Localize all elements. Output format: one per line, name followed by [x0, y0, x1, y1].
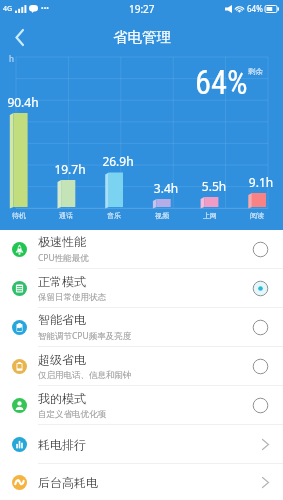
- button[interactable]: Back: [0, 18, 38, 50]
- staticText: 极速性能: [38, 234, 86, 249]
- staticText: 4G: [3, 4, 13, 14]
- staticText: •••: [41, 4, 49, 14]
- staticText: 9.1h: [241, 174, 281, 190]
- staticText: 保留日常使用状态: [38, 292, 106, 303]
- staticText: 后台高耗电: [38, 475, 248, 490]
- staticText: 19.7h: [50, 161, 90, 177]
- staticText: h: [9, 53, 14, 64]
- staticText: 超级省电: [38, 352, 86, 367]
- button[interactable]: 正常模式: [0, 269, 283, 307]
- staticText: 90.4h: [3, 94, 43, 110]
- staticText: 我的模式: [38, 391, 86, 406]
- staticText: 音乐: [94, 211, 134, 220]
- staticText: 智能调节CPU频率及亮度: [38, 330, 132, 342]
- staticText: 耗电排行: [38, 437, 248, 452]
- staticText: 26.9h: [98, 153, 138, 169]
- staticText: 64%: [195, 64, 248, 102]
- staticText: 待机: [0, 211, 39, 220]
- button[interactable]: 耗电排行: [0, 425, 283, 463]
- staticText: 64%: [247, 3, 263, 14]
- staticText: 仅启用电话、信息和闹钟: [38, 370, 132, 381]
- staticText: 19:27: [129, 2, 155, 16]
- staticText: CPU性能最优: [38, 252, 89, 264]
- staticText: 上网: [190, 211, 230, 220]
- staticText: 视频: [142, 211, 182, 220]
- staticText: 通话: [46, 211, 86, 220]
- staticText: 自定义省电优化项: [38, 409, 106, 420]
- button[interactable]: 智能省电: [0, 308, 283, 346]
- staticText: 正常模式: [38, 274, 86, 289]
- staticText: 省电管理: [113, 28, 171, 46]
- staticText: 智能省电: [38, 312, 86, 327]
- staticText: 3.4h: [146, 180, 186, 196]
- button[interactable]: 后台高耗电: [0, 464, 283, 500]
- staticText: 剩余: [248, 67, 263, 76]
- button[interactable]: 我的模式: [0, 386, 283, 424]
- button[interactable]: 极速性能: [0, 230, 283, 268]
- staticText: 阅读: [237, 211, 277, 220]
- staticText: 5.5h: [194, 178, 234, 194]
- button[interactable]: 超级省电: [0, 347, 283, 385]
